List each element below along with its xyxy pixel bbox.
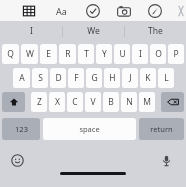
button[interactable]: 123: [2, 118, 40, 140]
button[interactable]: Emoji: [8, 151, 26, 169]
button[interactable]: V: [85, 92, 101, 112]
button[interactable]: Backspace: [161, 92, 184, 112]
button[interactable]: return: [139, 118, 184, 140]
button[interactable]: K: [140, 68, 156, 88]
staticText: C: [72, 96, 78, 108]
staticText: T: [84, 48, 89, 60]
button[interactable]: O: [150, 44, 166, 64]
button[interactable]: Y: [96, 44, 112, 64]
button[interactable]: The: [125, 21, 186, 41]
staticText: We: [87, 25, 100, 37]
button[interactable]: I: [132, 44, 148, 64]
staticText: I: [30, 25, 33, 37]
staticText: Aa: [56, 5, 67, 17]
staticText: X: [55, 96, 60, 108]
button[interactable]: Dictation: [157, 151, 175, 169]
button[interactable]: S: [32, 68, 48, 88]
button[interactable]: Aa: [52, 3, 70, 19]
button[interactable]: Q: [2, 44, 19, 64]
button[interactable]: Table: [21, 3, 37, 19]
staticText: W: [26, 48, 34, 60]
staticText: Z: [37, 96, 42, 108]
staticText: 123: [15, 124, 28, 134]
staticText: U: [119, 48, 126, 60]
button[interactable]: L: [158, 68, 174, 88]
staticText: F: [74, 72, 79, 84]
button[interactable]: X: [49, 92, 65, 112]
staticText: G: [91, 72, 98, 84]
staticText: S: [38, 72, 43, 84]
staticText: return: [150, 124, 173, 134]
button[interactable]: D: [50, 68, 66, 88]
button[interactable]: N: [121, 92, 137, 112]
button[interactable]: U: [114, 44, 130, 64]
staticText: space: [79, 124, 100, 134]
staticText: I: [139, 48, 142, 60]
button[interactable]: C: [67, 92, 83, 112]
button[interactable]: Shift: [2, 92, 25, 112]
staticText: R: [65, 48, 71, 60]
button[interactable]: F: [68, 68, 84, 88]
button[interactable]: A: [13, 68, 30, 88]
staticText: V: [90, 96, 96, 108]
button[interactable]: We: [63, 21, 124, 41]
button[interactable]: B: [103, 92, 119, 112]
staticText: E: [46, 48, 51, 60]
staticText: J: [129, 72, 132, 84]
button[interactable]: T: [78, 44, 94, 64]
button[interactable]: Camera: [116, 3, 132, 19]
button[interactable]: H: [104, 68, 120, 88]
staticText: Y: [102, 48, 107, 60]
button[interactable]: G: [86, 68, 102, 88]
staticText: Q: [7, 48, 14, 60]
button[interactable]: J: [122, 68, 138, 88]
staticText: M: [143, 96, 151, 108]
button[interactable]: W: [21, 44, 38, 64]
staticText: N: [126, 96, 133, 108]
button[interactable]: P: [168, 44, 184, 64]
button[interactable]: space: [43, 118, 136, 140]
staticText: K: [145, 72, 151, 84]
button[interactable]: M: [139, 92, 155, 112]
staticText: D: [55, 72, 62, 84]
button[interactable]: R: [59, 44, 76, 64]
staticText: B: [108, 96, 114, 108]
button[interactable]: Close: [176, 3, 186, 19]
staticText: A: [19, 72, 25, 84]
button[interactable]: E: [40, 44, 57, 64]
staticText: L: [164, 72, 169, 84]
button[interactable]: Markup: [147, 3, 163, 19]
staticText: P: [173, 48, 179, 60]
staticText: H: [109, 72, 116, 84]
button[interactable]: Z: [31, 92, 47, 112]
button[interactable]: I: [0, 21, 62, 41]
button[interactable]: Mark as done: [85, 3, 101, 19]
staticText: The: [148, 25, 163, 37]
staticText: O: [155, 48, 162, 60]
